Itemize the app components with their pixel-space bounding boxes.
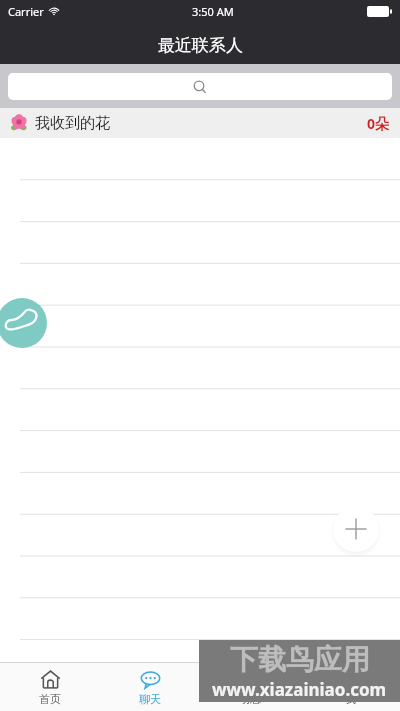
button[interactable]: 动态 [200, 663, 300, 711]
staticText: 最近联系人 [158, 35, 243, 56]
staticText: 首页 [39, 692, 61, 706]
staticText: 3:50 AM [192, 4, 234, 19]
staticText: www.xiazainiao.com [212, 678, 387, 700]
button[interactable]: 首页 [0, 663, 100, 711]
staticText: 我收到的花 [35, 114, 110, 133]
button[interactable]: Contact [0, 298, 47, 348]
button[interactable] [8, 73, 392, 100]
staticText: Carrier [8, 4, 44, 19]
staticText: 下载鸟应用 [230, 642, 370, 677]
staticText: 动态 [239, 692, 261, 706]
button[interactable]: 我 [300, 663, 400, 711]
staticText: 0朵 [367, 114, 390, 133]
button[interactable]: Add [331, 504, 381, 554]
button[interactable]: 我收到的花 [0, 108, 400, 138]
staticText: 聊天 [139, 692, 161, 706]
staticText: 我 [345, 692, 356, 706]
button[interactable]: 聊天 [100, 663, 200, 711]
